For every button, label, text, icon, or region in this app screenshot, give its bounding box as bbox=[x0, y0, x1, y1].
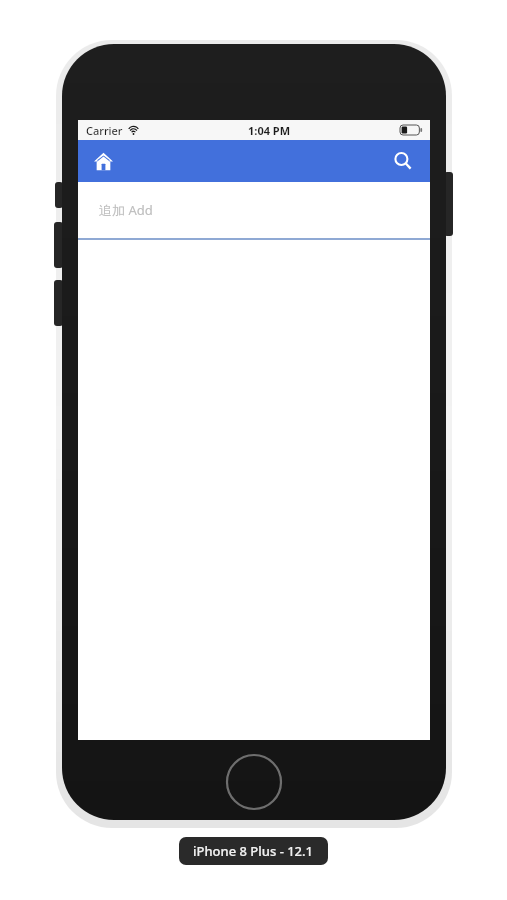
button[interactable]: 追加 Add bbox=[78, 182, 430, 238]
staticText: 1:04 PM bbox=[248, 123, 291, 138]
button[interactable]: Home bbox=[86, 144, 120, 178]
staticText: Carrier bbox=[86, 123, 123, 138]
button[interactable]: Search bbox=[386, 144, 420, 178]
staticText: 追加 Add bbox=[99, 201, 153, 219]
staticText: iPhone 8 Plus - 12.1 bbox=[193, 842, 314, 860]
button[interactable]: Home button bbox=[225, 753, 283, 811]
